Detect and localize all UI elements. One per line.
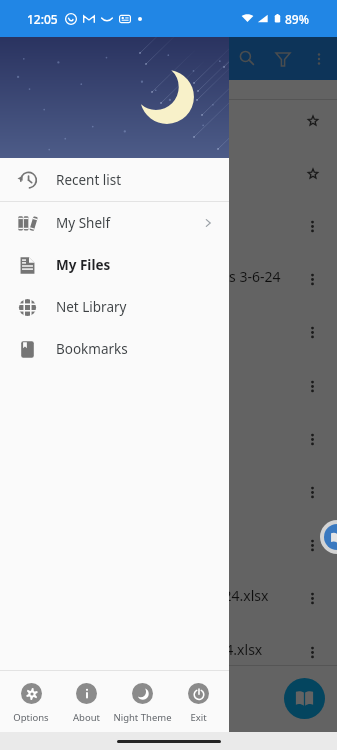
staticText: Budget 2024.xlsx — [156, 586, 269, 605]
button[interactable] — [0, 306, 337, 359]
staticText: 12:05 — [27, 11, 58, 27]
button[interactable]: Bookmarks — [0, 328, 229, 370]
button[interactable] — [0, 413, 337, 466]
button[interactable] — [0, 94, 337, 147]
button[interactable]: Night Theme — [109, 671, 175, 732]
button[interactable]: More options — [301, 41, 337, 77]
staticText: Bookmarks — [56, 340, 128, 358]
button[interactable]: My Files — [0, 244, 229, 286]
staticText: Night Theme — [113, 711, 172, 724]
button[interactable]: Options — [0, 671, 64, 732]
button[interactable] — [0, 466, 337, 519]
button[interactable]: Recent list — [0, 158, 229, 201]
button[interactable]: Continue reading — [320, 520, 337, 554]
button[interactable]: List 4.xlsx — [0, 626, 337, 679]
staticText: About — [73, 711, 100, 724]
button[interactable]: Net Library — [0, 286, 229, 328]
staticText: List 4.xlsx — [199, 640, 263, 659]
button[interactable]: Open book — [284, 678, 325, 719]
button[interactable] — [0, 200, 337, 253]
staticText: 89% — [285, 11, 309, 27]
button[interactable]: My Shelf — [0, 202, 229, 244]
staticText: My Shelf — [56, 214, 111, 232]
button[interactable] — [0, 519, 337, 572]
button[interactable]: Filter — [265, 41, 301, 77]
button[interactable]: Photos 3-6-24 — [0, 253, 337, 306]
staticText: Recent list — [56, 171, 122, 189]
staticText: Exit — [190, 711, 207, 724]
staticText: Photos 3-6-24 — [190, 267, 281, 286]
button[interactable]: Budget 2024.xlsx — [0, 572, 337, 625]
button[interactable]: Exit — [165, 671, 231, 732]
staticText: Options — [13, 711, 49, 724]
button[interactable] — [0, 147, 337, 200]
button[interactable]: Search — [229, 41, 265, 77]
staticText: Net Library — [56, 298, 127, 316]
button[interactable]: About — [53, 671, 119, 732]
staticText: My Files — [56, 256, 111, 274]
button[interactable] — [0, 360, 337, 413]
